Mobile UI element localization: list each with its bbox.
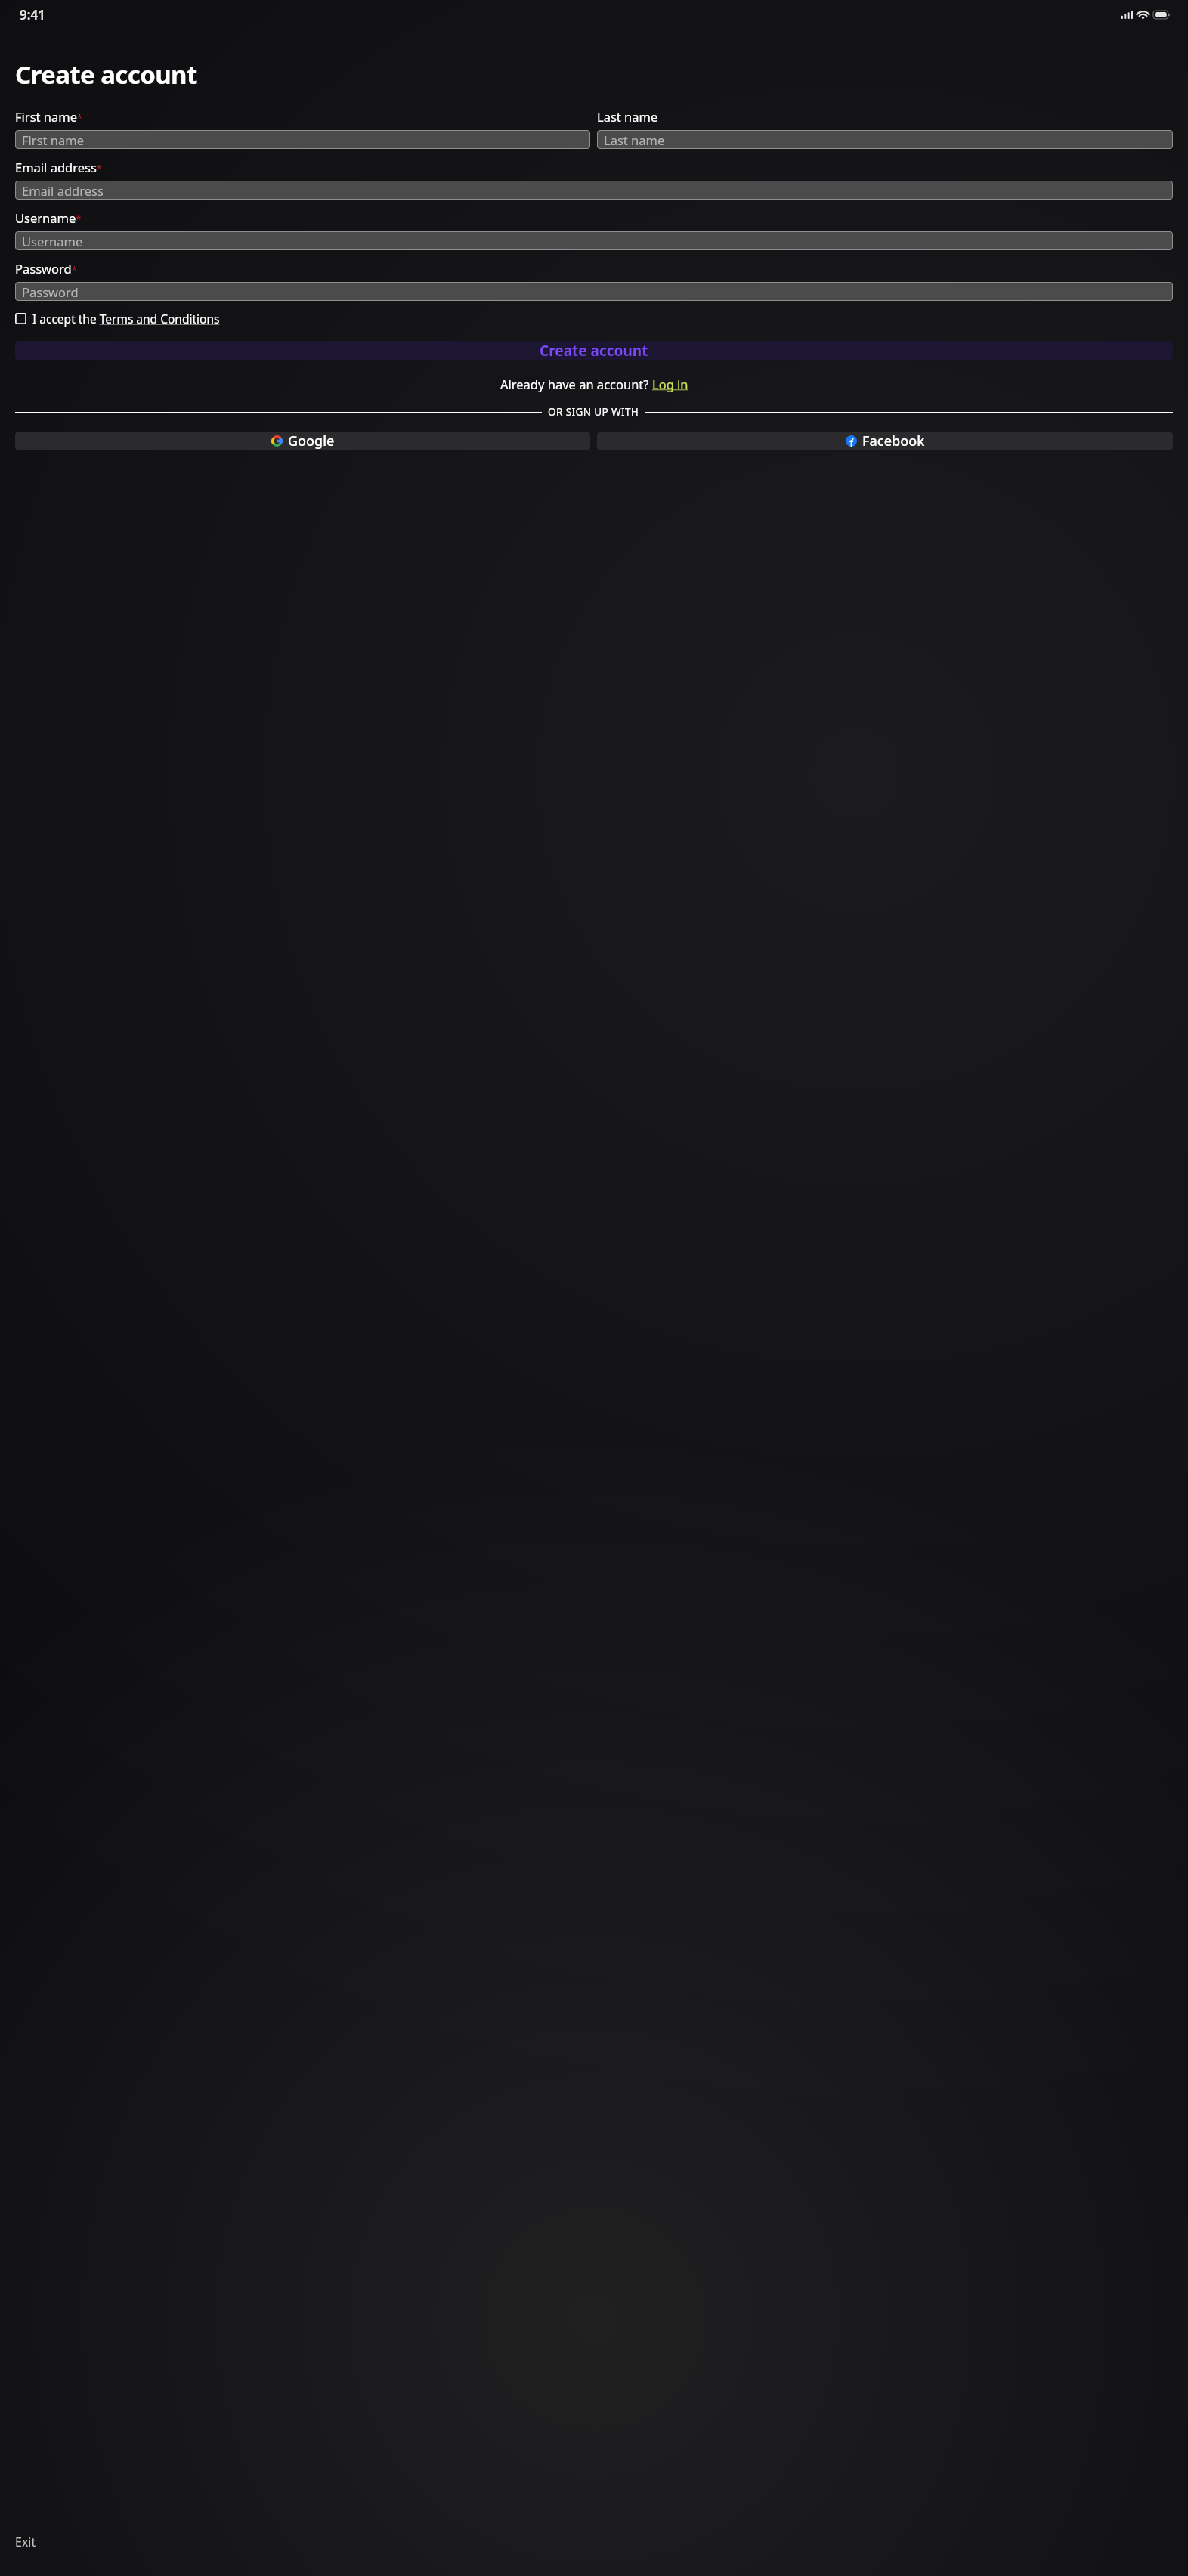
button[interactable]: Exit [15, 2532, 36, 2552]
button[interactable]: Log in [652, 376, 688, 392]
button[interactable]: Username [15, 231, 1173, 250]
staticText: Last name [604, 132, 665, 148]
button[interactable]: Google [15, 432, 590, 450]
staticText: 9:41 [20, 6, 45, 23]
staticText: Username* [15, 209, 82, 226]
staticText: Already have an account? [500, 376, 652, 392]
staticText: Username [22, 233, 83, 249]
button[interactable]: Password [15, 282, 1173, 301]
other: Facebook [846, 435, 857, 447]
staticText: Password* [15, 260, 77, 277]
staticText: Create account [15, 57, 197, 91]
staticText: OR SIGN UP WITH [548, 405, 639, 419]
other: Google [271, 435, 283, 447]
staticText: Log in [652, 376, 688, 392]
staticText: I accept the Terms and Conditions [32, 311, 220, 327]
staticText: Password [22, 283, 79, 300]
staticText: Create account [540, 341, 648, 360]
staticText: Last name [597, 108, 658, 125]
staticText: Email address [22, 182, 104, 199]
staticText: First name* [15, 108, 83, 125]
button[interactable]: I accept the Terms and Conditions [15, 308, 220, 329]
button[interactable]: First name [15, 130, 590, 149]
staticText: Google [288, 432, 335, 450]
staticText: Email address* [15, 159, 102, 175]
button[interactable]: Email address [15, 181, 1173, 200]
button[interactable]: Facebook [597, 432, 1173, 450]
button[interactable]: Last name [597, 130, 1173, 149]
staticText: Facebook [862, 432, 925, 450]
staticText: First name [22, 132, 84, 148]
button[interactable]: Create account [15, 341, 1173, 360]
staticText: Exit [15, 2534, 36, 2550]
